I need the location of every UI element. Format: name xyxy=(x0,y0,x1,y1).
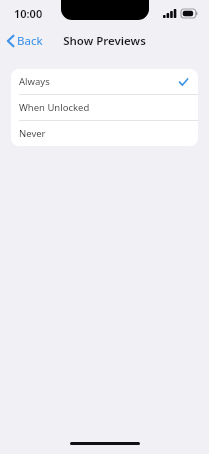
button[interactable]: Never xyxy=(11,121,198,146)
staticText: Show Previews xyxy=(63,33,146,49)
button[interactable]: When Unlocked xyxy=(11,95,198,120)
staticText: When Unlocked xyxy=(19,101,90,114)
button[interactable]: Back xyxy=(0,29,51,53)
staticText: Always xyxy=(19,75,50,88)
button[interactable]: Always xyxy=(11,69,198,94)
staticText: Never xyxy=(19,127,46,140)
staticText: Back xyxy=(17,33,43,49)
staticText: 10:00 xyxy=(14,6,43,21)
